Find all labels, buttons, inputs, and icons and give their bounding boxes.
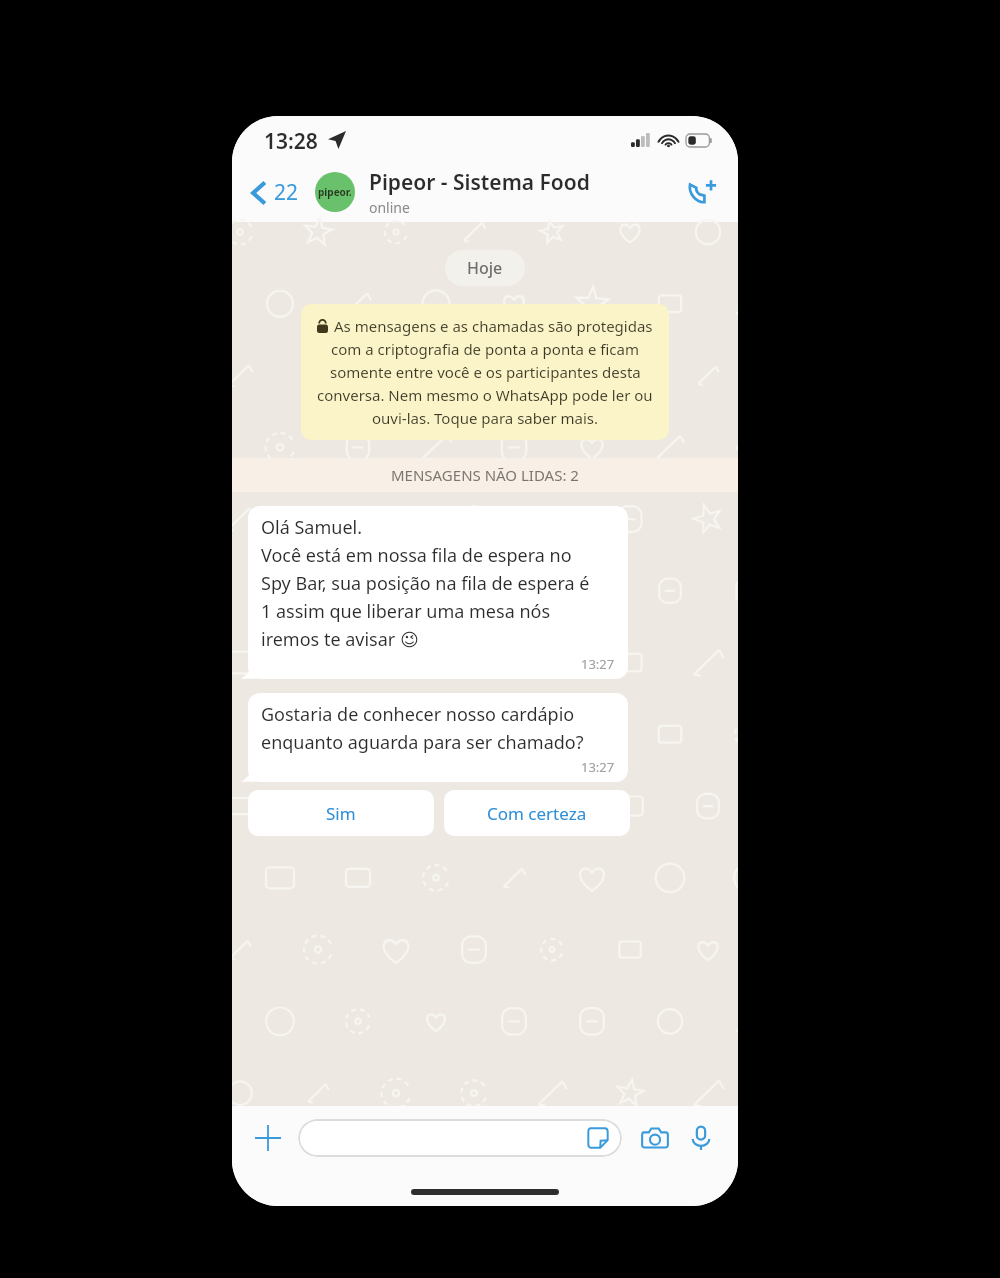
staticText: somente entre você e os participantes de… [330, 362, 641, 382]
staticText: pipeor. [318, 185, 352, 199]
staticText: 13:27 [581, 655, 615, 673]
button[interactable]: Pipeor - Sistema Food [369, 168, 682, 217]
staticText: Gostaria de conhecer nosso cardápio [261, 702, 575, 727]
button[interactable]: Olá Samuel. [248, 506, 628, 679]
button[interactable]: Nova chamada [682, 172, 722, 212]
button[interactable]: Gostaria de conhecer nosso cardápio [248, 693, 628, 782]
staticText: 1 assim que liberar uma mesa nós [261, 599, 551, 624]
staticText: com a criptografia de ponta a ponta e fi… [331, 339, 639, 359]
button[interactable]: Anexar [250, 1120, 286, 1156]
button[interactable]: As mensagens e as chamadas são protegida… [301, 304, 669, 440]
staticText: Olá Samuel. [261, 515, 363, 540]
staticText: Sim [326, 802, 356, 825]
button[interactable]: Gravar áudio [682, 1119, 720, 1157]
staticText: MENSAGENS NÃO LIDAS: 2 [391, 465, 579, 485]
button[interactable]: 22 [248, 172, 303, 213]
button[interactable]: Figurinhas [298, 1119, 622, 1157]
button[interactable]: Hoje [445, 250, 525, 286]
staticText: conversa. Nem mesmo o WhatsApp pode ler … [317, 385, 653, 405]
staticText: Hoje [467, 257, 503, 279]
staticText: online [369, 198, 410, 217]
staticText: iremos te avisar 😉 [261, 627, 419, 652]
staticText: Com certeza [487, 802, 587, 825]
staticText: 13:27 [581, 758, 615, 776]
button[interactable]: Câmera [636, 1119, 674, 1157]
button[interactable]: Figurinhas [584, 1124, 612, 1152]
staticText: 13:28 [264, 127, 318, 156]
staticText: 22 [274, 178, 299, 207]
staticText: As mensagens e as chamadas são protegida… [334, 316, 653, 336]
staticText: Você está em nossa fila de espera no [261, 543, 572, 568]
button[interactable]: Sim [248, 790, 434, 836]
staticText: Spy Bar, sua posição na fila de espera é [261, 571, 590, 596]
staticText: ouvi-las. Toque para saber mais. [372, 408, 599, 428]
staticText: enquanto aguarda para ser chamado? [261, 730, 584, 755]
staticText: Pipeor - Sistema Food [369, 168, 590, 197]
button[interactable]: pipeor. [315, 172, 355, 212]
button[interactable]: Com certeza [444, 790, 630, 836]
